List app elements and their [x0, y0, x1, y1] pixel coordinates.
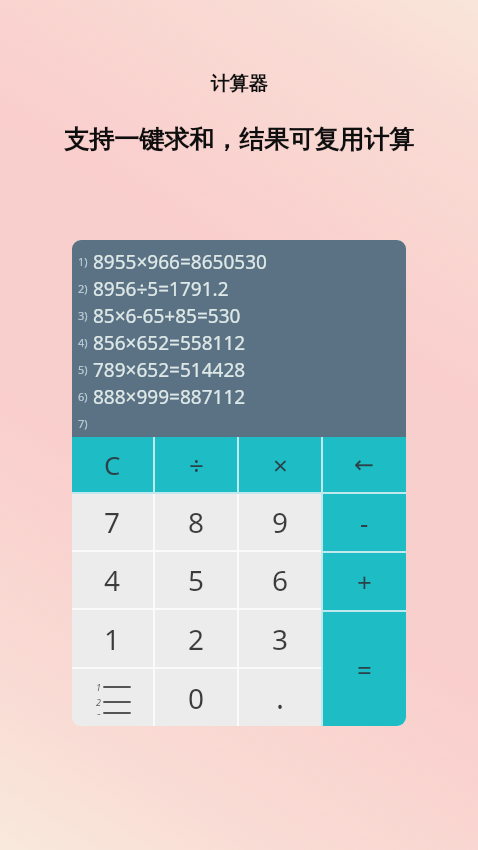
staticText: 4) — [78, 335, 88, 350]
button[interactable]: Plus — [323, 553, 406, 610]
staticText: 3) — [78, 308, 88, 323]
staticText: 6) — [78, 389, 88, 404]
staticText: 8956÷5=1791.2 — [93, 276, 229, 302]
button[interactable]: 9 — [239, 494, 321, 550]
button[interactable]: Divide — [155, 437, 237, 492]
button[interactable]: 0 — [155, 669, 237, 726]
staticText: + — [357, 564, 372, 599]
staticText: 7 — [104, 503, 121, 541]
staticText: 2) — [78, 281, 88, 296]
button[interactable]: 3 — [239, 610, 321, 667]
staticText: ← — [354, 451, 375, 479]
staticText: 3 — [96, 711, 101, 715]
button[interactable]: Minus — [323, 494, 406, 551]
staticText: = — [357, 652, 372, 687]
staticText: 2 — [96, 696, 101, 708]
staticText: ÷ — [189, 447, 204, 482]
staticText: 3 — [272, 620, 289, 658]
staticText: 5) — [78, 362, 88, 377]
staticText: 9 — [272, 503, 289, 541]
staticText: 0 — [188, 679, 205, 717]
staticText: 1 — [104, 620, 121, 658]
staticText: C — [104, 447, 121, 482]
staticText: 789×652=514428 — [93, 357, 246, 383]
button[interactable]: Multiply — [239, 437, 321, 492]
button[interactable]: Clear — [72, 437, 153, 492]
staticText: 4 — [104, 561, 121, 599]
staticText: . — [276, 677, 285, 718]
button[interactable]: 2 — [155, 610, 237, 667]
staticText: - — [360, 505, 369, 540]
staticText: 8955×966=8650530 — [93, 249, 267, 275]
staticText: 8 — [188, 503, 205, 541]
button[interactable]: 6 — [239, 552, 321, 608]
button[interactable]: History list — [72, 669, 153, 726]
staticText: 5 — [188, 561, 205, 599]
button[interactable]: 1 — [72, 610, 153, 667]
button[interactable]: Backspace — [323, 437, 406, 492]
staticText: 1 — [96, 681, 101, 693]
button[interactable]: 4 — [72, 552, 153, 608]
staticText: 1) — [78, 254, 88, 269]
button[interactable]: 8 — [155, 494, 237, 550]
staticText: 支持一键求和，结果可复用计算 — [0, 124, 478, 155]
staticText: 888×999=887112 — [93, 384, 246, 410]
staticText: 85×6-65+85=530 — [93, 303, 241, 329]
staticText: 计算器 — [0, 72, 478, 96]
button[interactable]: . — [239, 669, 321, 726]
staticText: 7) — [78, 416, 88, 431]
button[interactable]: Equals — [323, 612, 406, 726]
button[interactable]: 7 — [72, 494, 153, 550]
staticText: 6 — [272, 561, 289, 599]
staticText: 856×652=558112 — [93, 330, 246, 356]
staticText: 2 — [188, 620, 205, 658]
staticText: × — [273, 447, 288, 482]
button[interactable]: 5 — [155, 552, 237, 608]
